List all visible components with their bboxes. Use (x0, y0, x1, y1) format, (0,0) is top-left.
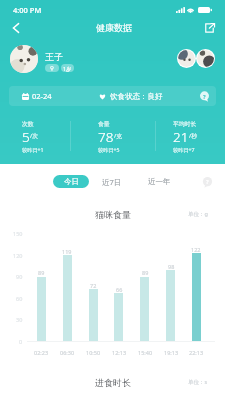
staticText: 0 (19, 338, 23, 345)
staticText: /秒 (189, 132, 197, 140)
staticText: 王子 (45, 51, 63, 62)
staticText: 90 (16, 273, 23, 280)
staticText: 122 (191, 246, 201, 253)
staticText: 66 (116, 286, 123, 293)
staticText: 健康数据 (96, 22, 132, 33)
staticText: 猫咪食量 (95, 209, 131, 220)
staticText: ? (206, 178, 209, 185)
staticText: 120 (13, 252, 23, 259)
staticText: 15:40 (138, 349, 153, 356)
staticText: 较昨日+1 (22, 146, 44, 153)
staticText: 06:30 (60, 349, 75, 356)
staticText: 平均时长 (173, 120, 197, 127)
staticText: 饮食状态：良好 (110, 92, 163, 101)
staticText: 60 (16, 295, 23, 302)
button[interactable]: Help (197, 89, 211, 103)
button[interactable]: Back (4, 16, 27, 39)
staticText: 72 (90, 282, 97, 289)
staticText: 近7日 (102, 177, 122, 187)
staticText: 单位：s (188, 378, 208, 386)
staticText: ♀ (50, 65, 54, 71)
staticText: 10:50 (86, 349, 101, 356)
button[interactable]: 今日 (53, 175, 89, 188)
staticText: 较昨日+5 (98, 146, 120, 153)
staticText: 较昨日+7 (173, 146, 195, 153)
staticText: 1岁 (63, 65, 72, 72)
staticText: 119 (62, 248, 72, 255)
staticText: 19:13 (164, 349, 179, 356)
button[interactable]: 近7日 (99, 175, 125, 188)
staticText: 单位：g (188, 210, 208, 218)
staticText: 进食时长 (95, 377, 131, 388)
staticText: 次数 (22, 120, 34, 127)
staticText: 5 (22, 128, 30, 142)
staticText: 89 (142, 269, 149, 276)
staticText: 89 (38, 269, 45, 276)
staticText: 02:23 (34, 349, 49, 356)
staticText: 78 (98, 128, 114, 142)
staticText: /克 (114, 132, 122, 140)
staticText: 150 (13, 230, 23, 237)
staticText: 食量 (98, 120, 110, 127)
staticText: 近一年 (148, 177, 171, 186)
staticText: 今日 (64, 177, 79, 186)
staticText: 4:00 PM (13, 5, 42, 15)
staticText: ? (203, 93, 206, 100)
staticText: /次 (30, 132, 38, 140)
staticText: 02-24 (32, 91, 52, 101)
button[interactable]: 近一年 (146, 175, 173, 188)
staticText: 30 (16, 316, 23, 323)
staticText: 12:13 (112, 349, 127, 356)
staticText: 22:13 (189, 349, 204, 356)
staticText: 21 (173, 128, 189, 142)
button[interactable]: Help (200, 175, 214, 189)
staticText: 98 (168, 263, 175, 270)
button[interactable]: Share (198, 16, 221, 39)
